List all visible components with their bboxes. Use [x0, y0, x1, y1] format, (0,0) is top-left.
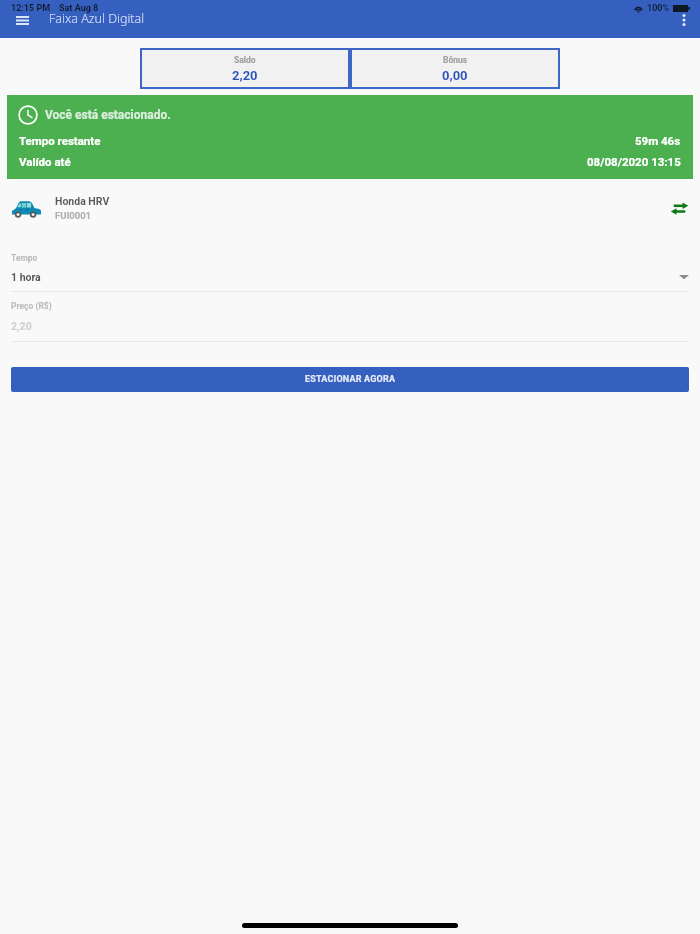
staticText: 1 hora [11, 271, 41, 283]
staticText: Sat Aug 8 [59, 3, 99, 14]
staticText: Honda HRV [55, 195, 110, 207]
staticText: 0,00 [442, 68, 468, 83]
staticText: Preço (R$) [11, 301, 52, 311]
staticText: 59m 46s [635, 134, 681, 147]
staticText: Saldo [234, 55, 256, 65]
staticText: Valído até [19, 155, 71, 168]
staticText: Tempo [11, 253, 38, 263]
staticText: FUI0001 [55, 210, 92, 221]
button[interactable]: Saldo [140, 48, 350, 89]
button[interactable]: Bônus [350, 48, 560, 89]
button[interactable]: Honda HRV [0, 179, 700, 237]
button[interactable]: Menu [8, 8, 37, 32]
button[interactable]: ESTACIONAR AGORA [11, 367, 689, 392]
staticText: Faixa Azul Digital [49, 10, 145, 26]
staticText: 100% [647, 3, 670, 14]
staticText: 12:15 PM [11, 3, 51, 14]
button[interactable]: More options [674, 8, 694, 32]
staticText: 2,20 [232, 68, 258, 83]
staticText: 2,20 [11, 320, 32, 332]
staticText: Você está estacionado. [45, 108, 171, 122]
staticText: Tempo restante [19, 134, 101, 147]
staticText: 08/08/2020 13:15 [587, 155, 681, 168]
staticText: Bônus [443, 55, 468, 65]
button[interactable]: 1 hora [11, 271, 689, 283]
staticText: ESTACIONAR AGORA [305, 374, 396, 385]
button[interactable]: Trocar veiculo [665, 194, 693, 222]
